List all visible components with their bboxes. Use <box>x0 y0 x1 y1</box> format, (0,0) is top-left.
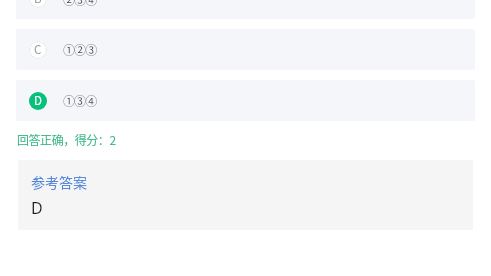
button[interactable]: D <box>16 80 475 121</box>
staticText: B <box>34 0 42 7</box>
staticText: 参考答案 <box>31 172 87 192</box>
staticText: ①②③ <box>63 41 97 58</box>
staticText: ②③④ <box>63 0 97 8</box>
staticText: ①③④ <box>63 92 97 109</box>
button[interactable]: C <box>16 29 475 70</box>
staticText: 回答正确，得分：2 <box>17 131 116 148</box>
staticText: C <box>34 41 42 58</box>
staticText: D <box>31 197 43 219</box>
staticText: D <box>34 92 42 109</box>
button[interactable]: B <box>16 0 475 19</box>
